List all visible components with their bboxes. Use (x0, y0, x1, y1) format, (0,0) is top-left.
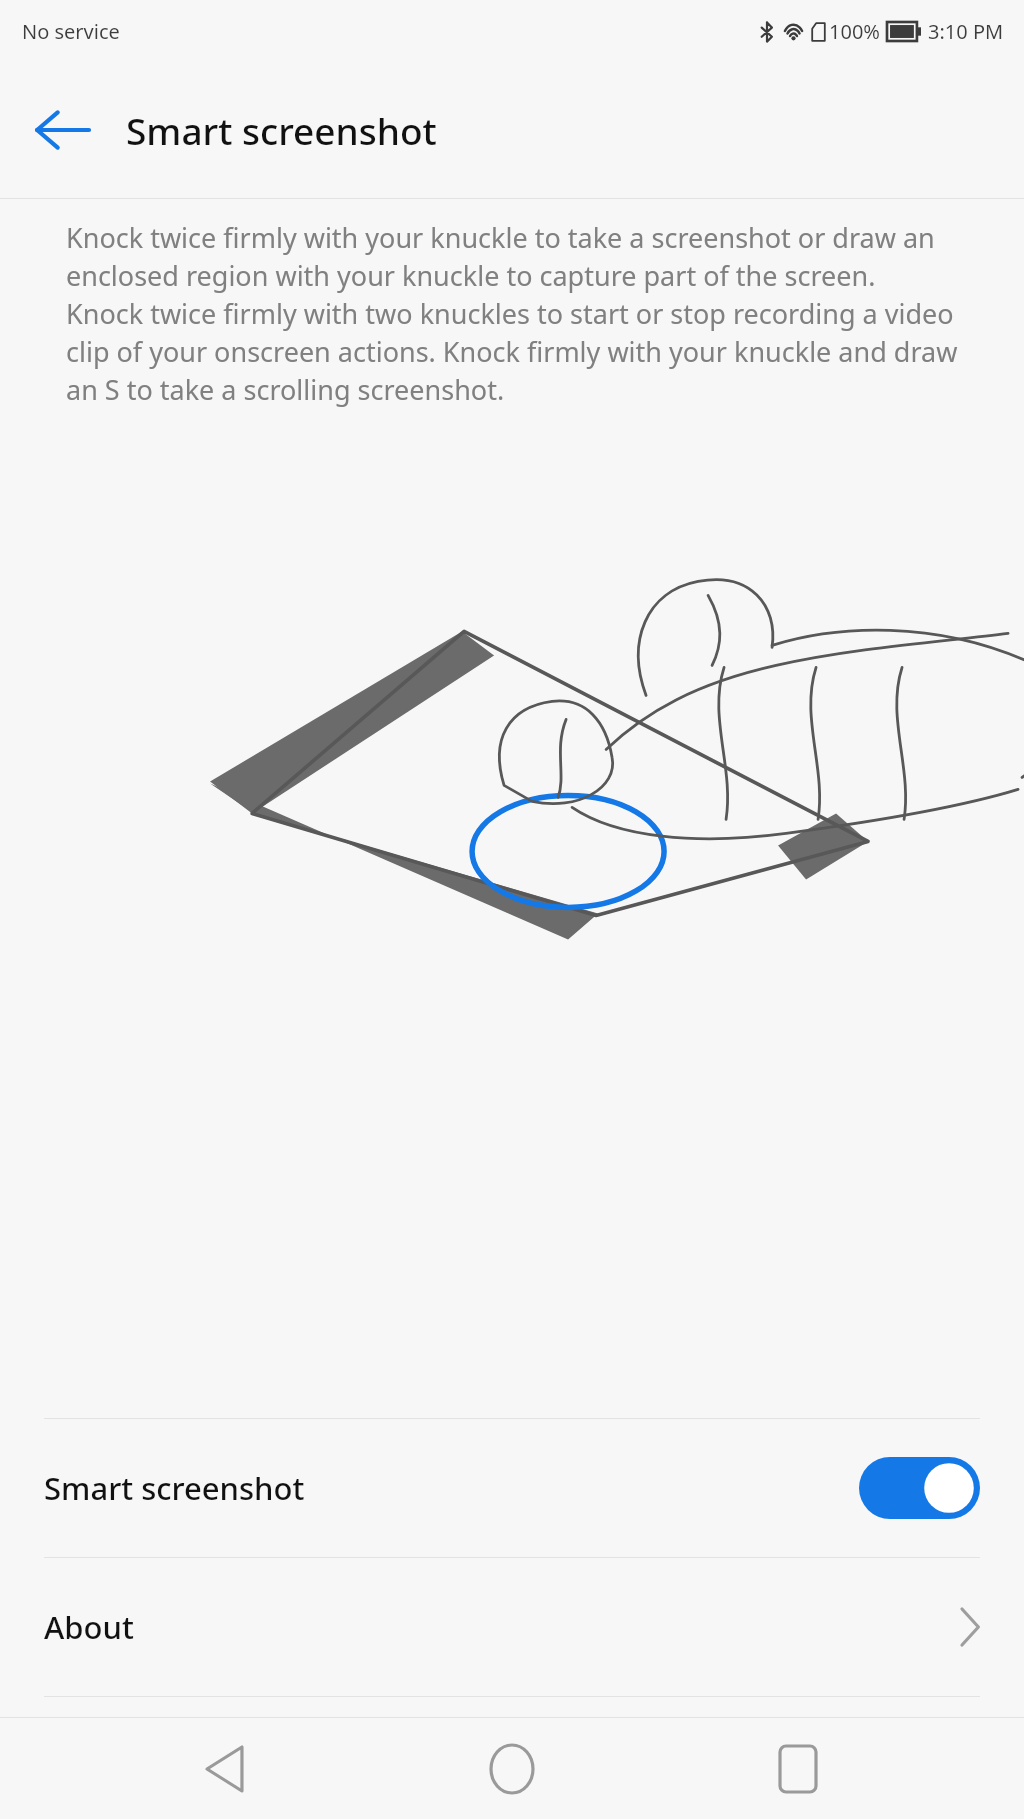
staticText: 100% (829, 18, 880, 45)
button[interactable]: About (0, 1558, 1024, 1696)
button[interactable]: Smart screenshot (0, 1419, 1024, 1557)
button[interactable]: Recent apps (738, 1718, 858, 1819)
button[interactable]: Back (166, 1718, 286, 1819)
button[interactable]: Home (452, 1718, 572, 1819)
button[interactable]: Back (24, 92, 100, 168)
staticText: No service (22, 18, 120, 45)
staticText: Smart screenshot (126, 105, 437, 155)
staticText: Knock twice firmly with your knuckle to … (66, 219, 958, 408)
staticText: 3:10 PM (928, 18, 1004, 45)
staticText: About (44, 1606, 134, 1648)
staticText: Smart screenshot (44, 1467, 305, 1509)
